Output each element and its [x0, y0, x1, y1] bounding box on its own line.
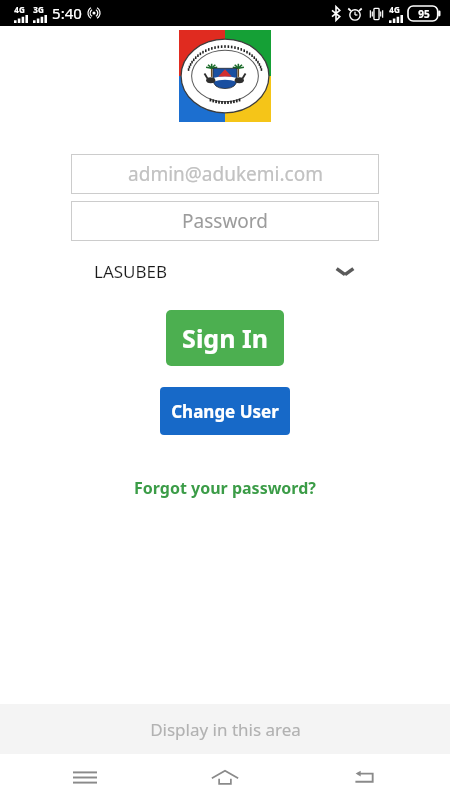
staticText: LASUBEB: [94, 260, 168, 283]
staticText: 95: [418, 7, 430, 21]
button[interactable]: Forgot your password?: [0, 473, 450, 503]
staticText: 4G: [14, 4, 25, 15]
button[interactable]: Recent apps: [30, 754, 140, 800]
staticText: Change User: [171, 400, 279, 423]
staticText: Password: [182, 208, 268, 234]
button[interactable]: Password: [71, 201, 379, 241]
staticText: Sign In: [182, 321, 268, 355]
button[interactable]: Home: [170, 754, 280, 800]
staticText: 3G: [33, 4, 44, 15]
staticText: 4G: [389, 4, 400, 15]
staticText: 5:40: [52, 3, 82, 23]
button[interactable]: Change User: [160, 387, 290, 435]
button[interactable]: Sign In: [166, 310, 284, 366]
button[interactable]: admin@adukemi.com: [71, 154, 379, 194]
staticText: admin@adukemi.com: [128, 161, 323, 187]
staticText: Forgot your password?: [134, 477, 316, 499]
button[interactable]: Back: [310, 754, 420, 800]
button[interactable]: LASUBEB: [94, 253, 356, 289]
staticText: Display in this area: [150, 718, 301, 741]
